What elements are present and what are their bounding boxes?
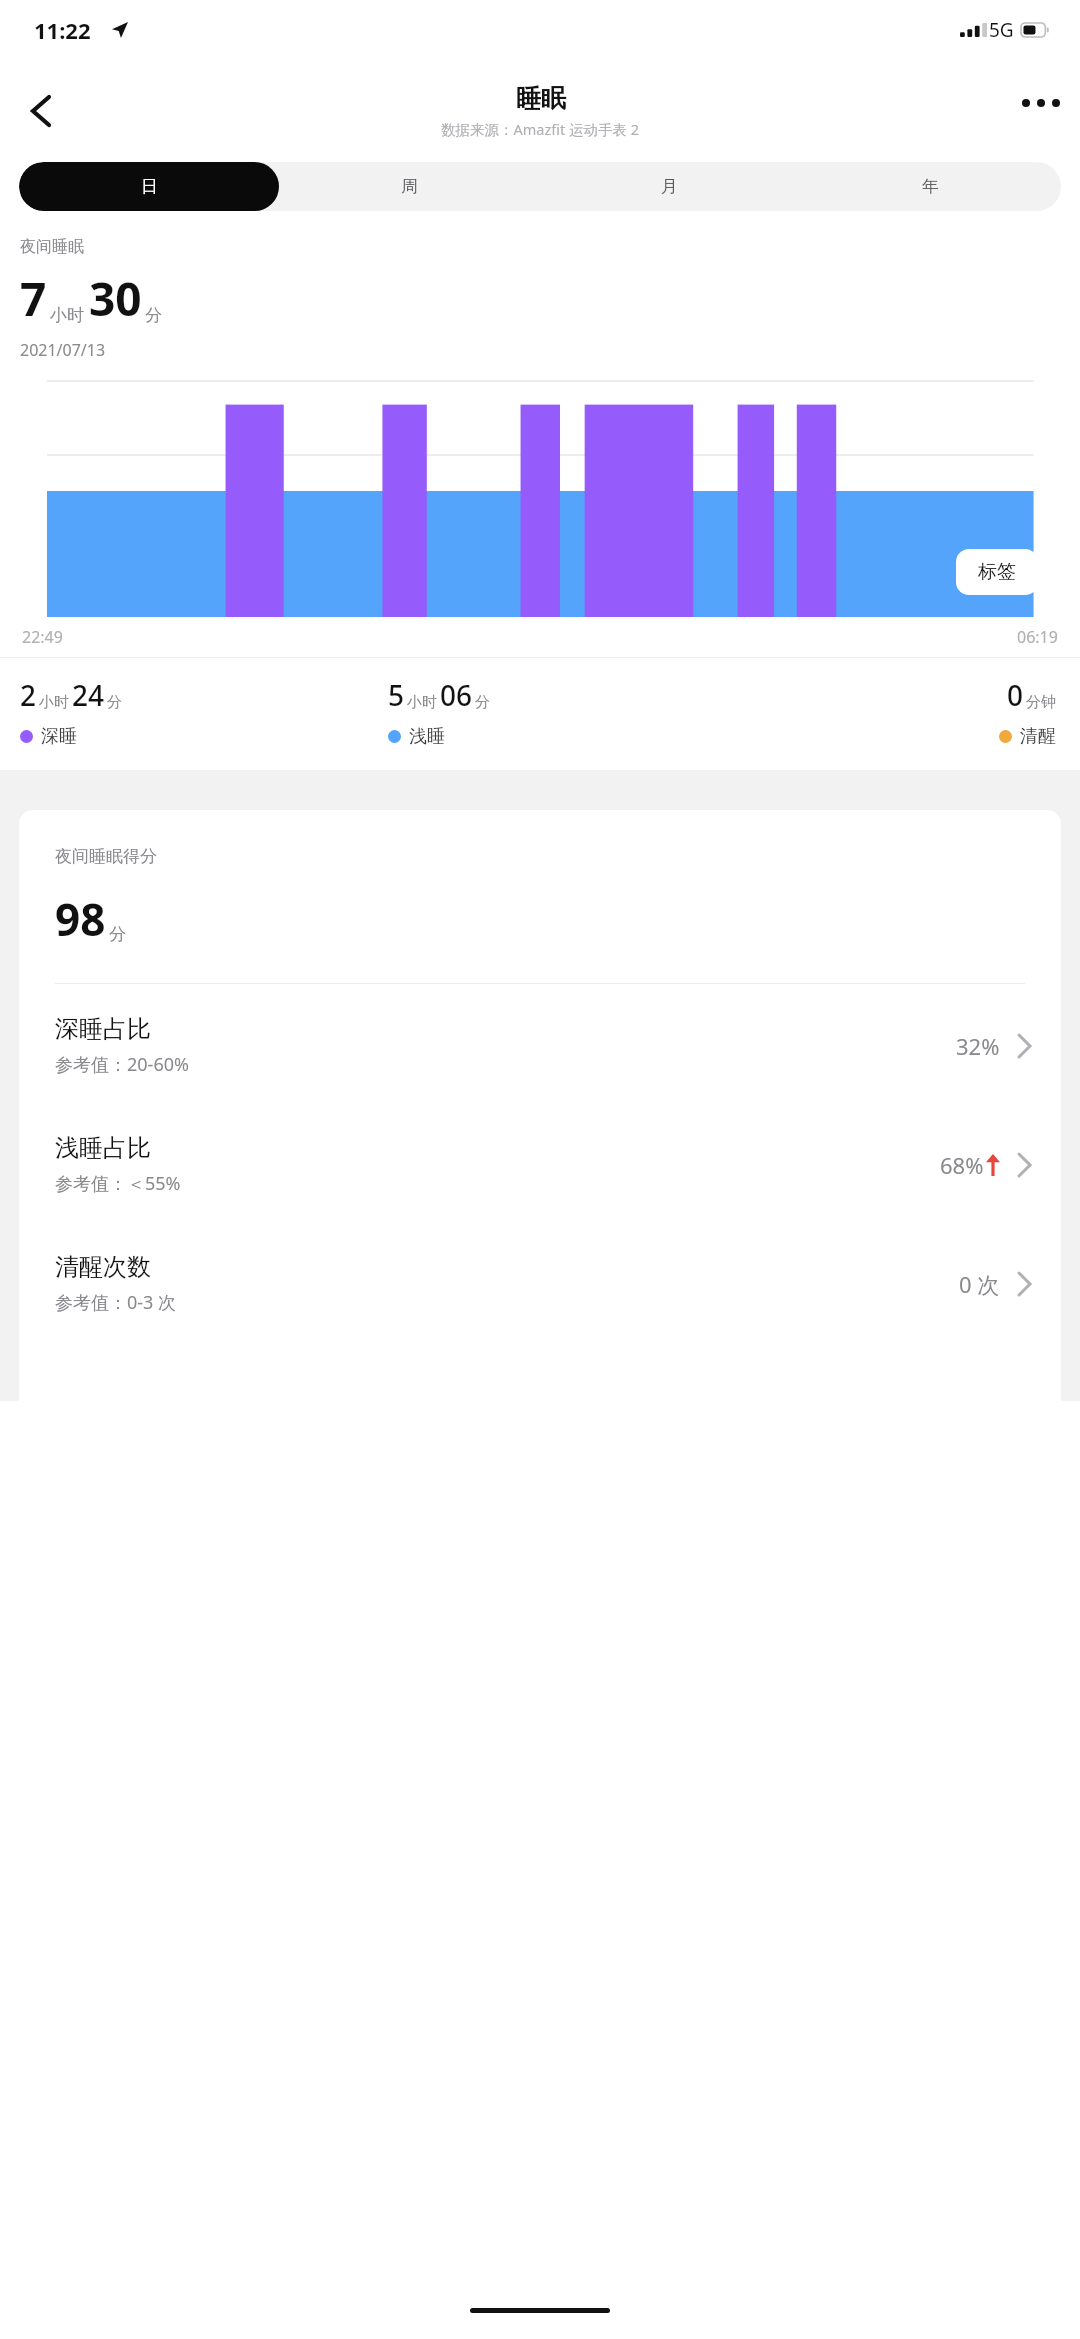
staticText: 日 xyxy=(141,176,158,197)
staticText: 5 xyxy=(388,676,405,714)
button[interactable]: 清醒次数 xyxy=(19,1222,1061,1341)
staticText: 68% xyxy=(940,1150,984,1180)
staticText: 24 xyxy=(72,676,105,714)
staticText: 清醒次数 xyxy=(55,1252,151,1282)
staticText: 11:22 xyxy=(34,15,91,45)
staticText: 2 xyxy=(20,676,37,714)
staticText: 小时 xyxy=(39,693,69,712)
staticText: 98 xyxy=(55,889,106,949)
staticText: 32% xyxy=(956,1031,1000,1061)
staticText: 分 xyxy=(145,305,162,326)
button[interactable]: 周 xyxy=(279,162,539,211)
button[interactable]: 月 xyxy=(539,162,800,211)
staticText: 夜间睡眠得分 xyxy=(55,846,157,867)
staticText: 06 xyxy=(440,676,473,714)
button[interactable]: 年 xyxy=(800,162,1061,211)
staticText: 数据来源：Amazfit 运动手表 2 xyxy=(441,119,640,139)
staticText: 分钟 xyxy=(1026,693,1056,712)
button[interactable]: Back xyxy=(10,80,72,142)
button[interactable]: 标签 xyxy=(956,549,1038,595)
staticText: 小时 xyxy=(50,305,84,326)
staticText: 标签 xyxy=(978,560,1016,584)
staticText: 分 xyxy=(109,924,126,945)
staticText: 分 xyxy=(107,693,122,712)
button[interactable]: 浅睡占比 xyxy=(19,1103,1061,1222)
staticText: 7 xyxy=(20,267,47,330)
staticText: 2021/07/13 xyxy=(20,339,106,361)
staticText: 睡眠 xyxy=(516,83,566,114)
staticText: 月 xyxy=(661,176,678,197)
staticText: 清醒 xyxy=(1020,725,1056,748)
staticText: 06:19 xyxy=(1017,626,1058,648)
staticText: 年 xyxy=(922,176,939,197)
staticText: 参考值：＜55% xyxy=(55,1171,181,1196)
staticText: 0 xyxy=(1007,676,1024,714)
staticText: 浅睡 xyxy=(409,725,445,748)
staticText: 0 次 xyxy=(959,1269,1000,1299)
button[interactable]: More options xyxy=(1010,72,1072,134)
staticText: 深睡占比 xyxy=(55,1014,151,1044)
staticText: 深睡 xyxy=(41,725,77,748)
staticText: 参考值：0-3 次 xyxy=(55,1290,177,1315)
staticText: 分 xyxy=(475,693,490,712)
button[interactable]: 深睡占比 xyxy=(19,984,1061,1103)
staticText: 参考值：20-60% xyxy=(55,1052,189,1077)
staticText: 小时 xyxy=(407,693,437,712)
staticText: 5G xyxy=(989,17,1014,43)
staticText: 周 xyxy=(401,176,418,197)
button[interactable]: 日 xyxy=(19,162,279,211)
staticText: 夜间睡眠 xyxy=(20,237,84,257)
staticText: 浅睡占比 xyxy=(55,1133,151,1163)
staticText: 22:49 xyxy=(22,626,63,648)
staticText: 30 xyxy=(89,267,142,330)
